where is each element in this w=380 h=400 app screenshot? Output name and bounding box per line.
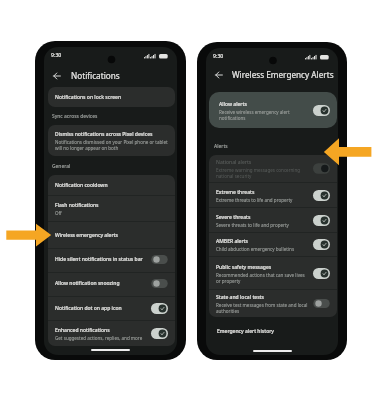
staticText: Allow notification snoozing — [55, 280, 120, 287]
staticText: Enhanced notifications — [55, 327, 110, 334]
button[interactable]: Dismiss notifications across Pixel devic… — [48, 125, 175, 156]
staticText: AMBER alerts — [216, 238, 248, 245]
staticText: Notifications — [71, 70, 120, 81]
staticText: Flash notifications — [55, 202, 99, 209]
button[interactable]: Back — [212, 68, 226, 82]
staticText: Allow alerts — [219, 101, 247, 108]
staticText: Wireless Emergency Alerts — [232, 69, 334, 80]
staticText: Severe threats — [216, 214, 251, 221]
staticText: Receive test messages from state and loc… — [216, 302, 308, 314]
staticText: Public safety messages — [216, 264, 272, 271]
button[interactable]: Allow alerts — [209, 92, 337, 128]
staticText: General — [52, 163, 71, 170]
staticText: National alerts — [216, 159, 252, 166]
staticText: Notification dot on app icon — [55, 305, 122, 312]
button[interactable]: Emergency alert history — [210, 322, 336, 340]
button[interactable]: State and local tests — [209, 290, 337, 317]
staticText: Get suggested actions, replies, and more — [55, 335, 143, 341]
staticText: Extreme threats — [216, 189, 255, 196]
staticText: Off — [55, 210, 62, 216]
button[interactable]: Notification cooldown — [48, 175, 175, 195]
staticText: Notifications on lock screen — [55, 94, 122, 101]
button[interactable]: Wireless emergency alerts — [48, 222, 175, 248]
staticText: Dismiss notifications across Pixel devic… — [55, 131, 153, 138]
staticText: Alerts — [214, 143, 228, 150]
button[interactable]: Enhanced notifications — [48, 321, 175, 346]
button[interactable]: Extreme threats — [209, 183, 337, 207]
button[interactable]: Hide silent notifications in status bar — [48, 248, 175, 271]
button[interactable]: Flash notifications — [48, 196, 175, 221]
staticText: Emergency alert history — [217, 328, 275, 335]
button[interactable]: Severe threats — [209, 208, 337, 232]
button[interactable]: Off — [151, 278, 168, 289]
button[interactable]: Allow notification snoozing — [48, 272, 175, 295]
staticText: Child abduction emergency bulletins — [216, 246, 295, 252]
button[interactable]: Off — [151, 254, 168, 265]
staticText: Extreme threats to life and property — [216, 197, 293, 203]
button[interactable]: Notification dot on app icon — [48, 296, 175, 320]
staticText: Recommended actions that can save lives … — [216, 272, 308, 284]
button[interactable]: On — [151, 328, 168, 339]
button[interactable]: On — [313, 239, 330, 250]
staticText: 9:30 — [213, 52, 224, 59]
button[interactable]: On — [313, 105, 330, 116]
staticText: Sync across devices — [52, 113, 98, 120]
button[interactable]: On — [313, 190, 330, 201]
button[interactable]: Notifications on lock screen — [48, 87, 175, 107]
staticText: Hide silent notifications in status bar — [55, 256, 143, 263]
staticText: 9:30 — [51, 51, 62, 58]
button[interactable]: On — [313, 215, 330, 226]
staticText: Wireless emergency alerts — [55, 232, 118, 239]
button[interactable]: On — [313, 268, 330, 279]
button[interactable]: On — [151, 303, 168, 314]
staticText: Notifications dismissed on your Pixel ph… — [55, 139, 168, 151]
staticText: Notification cooldown — [55, 182, 108, 189]
staticText: Severe threats to life and property — [216, 222, 289, 228]
staticText: State and local tests — [216, 294, 264, 301]
button[interactable]: Off — [313, 298, 330, 309]
button[interactable]: National alerts — [209, 155, 337, 182]
button[interactable]: Public safety messages — [209, 257, 337, 289]
button[interactable]: Off — [313, 163, 330, 174]
staticText: Extreme warning messages concerning nati… — [216, 167, 308, 179]
button[interactable]: AMBER alerts — [209, 233, 337, 256]
staticText: Receive wireless emergency alert notific… — [219, 109, 308, 121]
button[interactable]: Back — [50, 69, 64, 83]
